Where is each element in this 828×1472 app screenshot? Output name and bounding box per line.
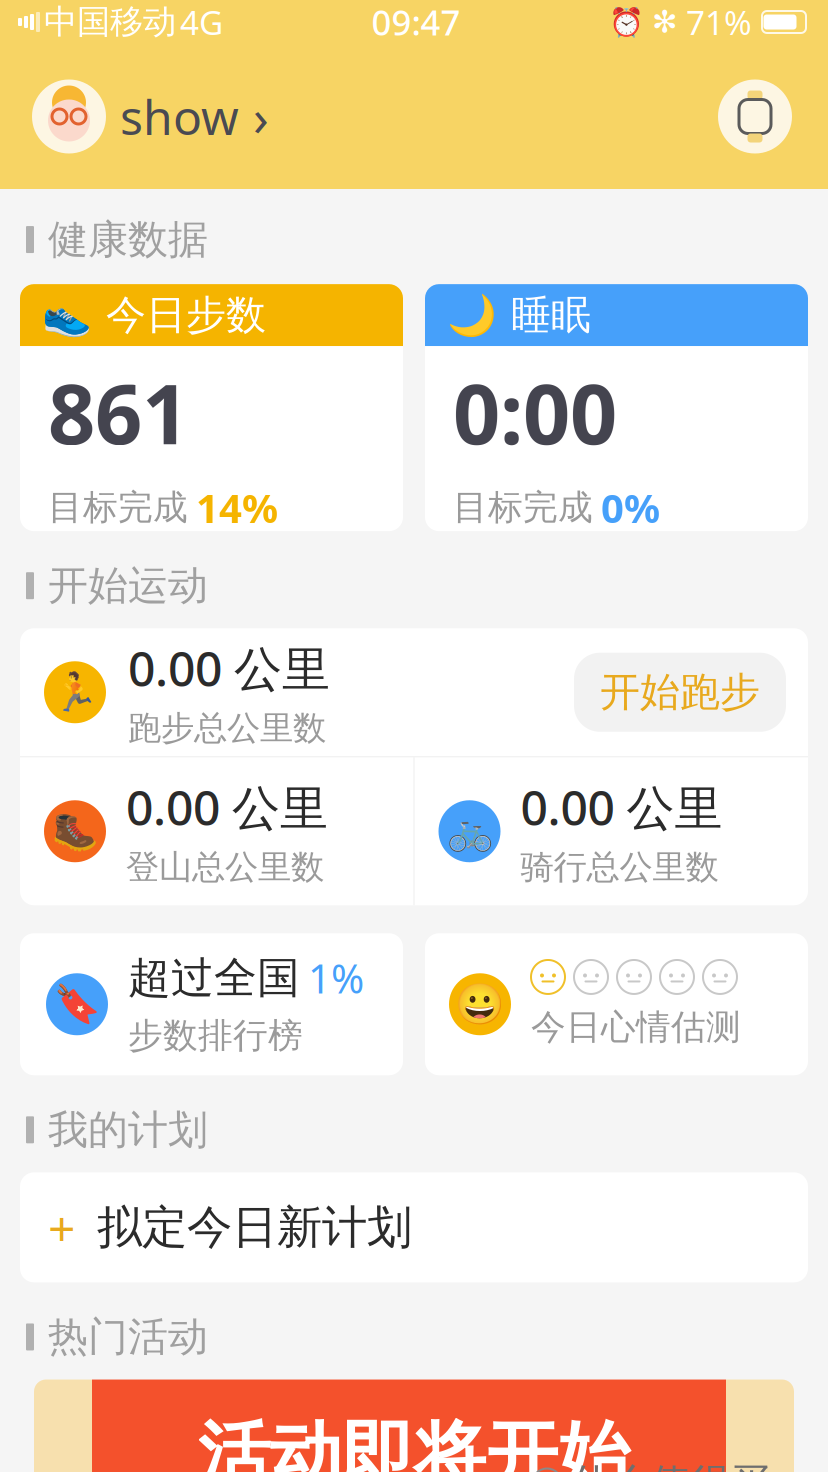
staticText: 🔖 xyxy=(54,983,100,1026)
staticText: 活动即将开始 xyxy=(198,1411,630,1472)
staticText: 🚲 xyxy=(446,810,492,853)
staticText: 超过全国 xyxy=(128,952,300,1004)
button[interactable]: Promotion banner xyxy=(34,1379,794,1472)
staticText: 开始跑步 xyxy=(600,668,760,717)
staticText: 14% xyxy=(196,481,278,534)
staticText: ⏰ xyxy=(609,6,644,38)
button[interactable]: 🚲 xyxy=(414,757,808,905)
button[interactable]: 👟 xyxy=(20,284,403,531)
staticText: 🏃 xyxy=(52,671,98,714)
button[interactable]: 🥾 xyxy=(20,757,413,905)
staticText: 0.00 公里 xyxy=(126,775,328,839)
staticText: 🥾 xyxy=(52,810,98,853)
staticText: 😀 xyxy=(455,981,505,1027)
staticText: 什么值得买 xyxy=(570,1459,770,1472)
button[interactable]: 🏃 xyxy=(44,636,574,749)
staticText: 09:47 xyxy=(371,0,460,45)
staticText: 0.00 公里 xyxy=(128,636,330,700)
staticText: 拟定今日新计划 xyxy=(97,1200,412,1255)
button[interactable]: 开始跑步 xyxy=(574,653,786,732)
staticText: 值 xyxy=(535,1469,559,1472)
staticText: ✻ xyxy=(652,5,678,39)
staticText: 0:00 xyxy=(453,357,617,467)
staticText: 861 xyxy=(48,357,189,467)
staticText: 步数排行榜 xyxy=(128,1014,303,1057)
staticText: 0.00 公里 xyxy=(520,775,722,839)
staticText: 0% xyxy=(601,481,660,534)
staticText: 健康数据 xyxy=(48,215,208,264)
staticText: 目标完成 xyxy=(48,486,188,529)
button[interactable]: Watch xyxy=(718,79,792,153)
staticText: 4G xyxy=(180,0,223,44)
staticText: 骑行总公里数 xyxy=(520,847,718,888)
staticText: 🌙 xyxy=(447,292,497,338)
staticText: 目标完成 xyxy=(453,486,593,529)
staticText: 热门活动 xyxy=(48,1312,208,1361)
button[interactable]: 🔖 xyxy=(20,933,403,1075)
staticText: 睡眠 xyxy=(511,291,591,340)
staticText: 跑步总公里数 xyxy=(128,708,326,749)
staticText: 1% xyxy=(308,951,364,1004)
staticText: + xyxy=(48,1195,75,1259)
staticText: 71% xyxy=(686,0,752,44)
button[interactable]: + xyxy=(20,1172,808,1282)
button[interactable]: show xyxy=(32,79,269,153)
staticText: 中国移动 xyxy=(44,1,176,42)
staticText: 登山总公里数 xyxy=(126,847,324,888)
staticText: 开始运动 xyxy=(48,561,208,610)
staticText: 今日步数 xyxy=(106,291,266,340)
staticText: 今日心情估测 xyxy=(531,1006,741,1049)
staticText: show xyxy=(120,85,239,148)
button[interactable]: 😀 xyxy=(425,933,808,1075)
staticText: › xyxy=(253,83,269,150)
button[interactable]: 🌙 xyxy=(425,284,808,531)
staticText: 我的计划 xyxy=(48,1105,208,1154)
staticText: 👟 xyxy=(42,292,92,338)
